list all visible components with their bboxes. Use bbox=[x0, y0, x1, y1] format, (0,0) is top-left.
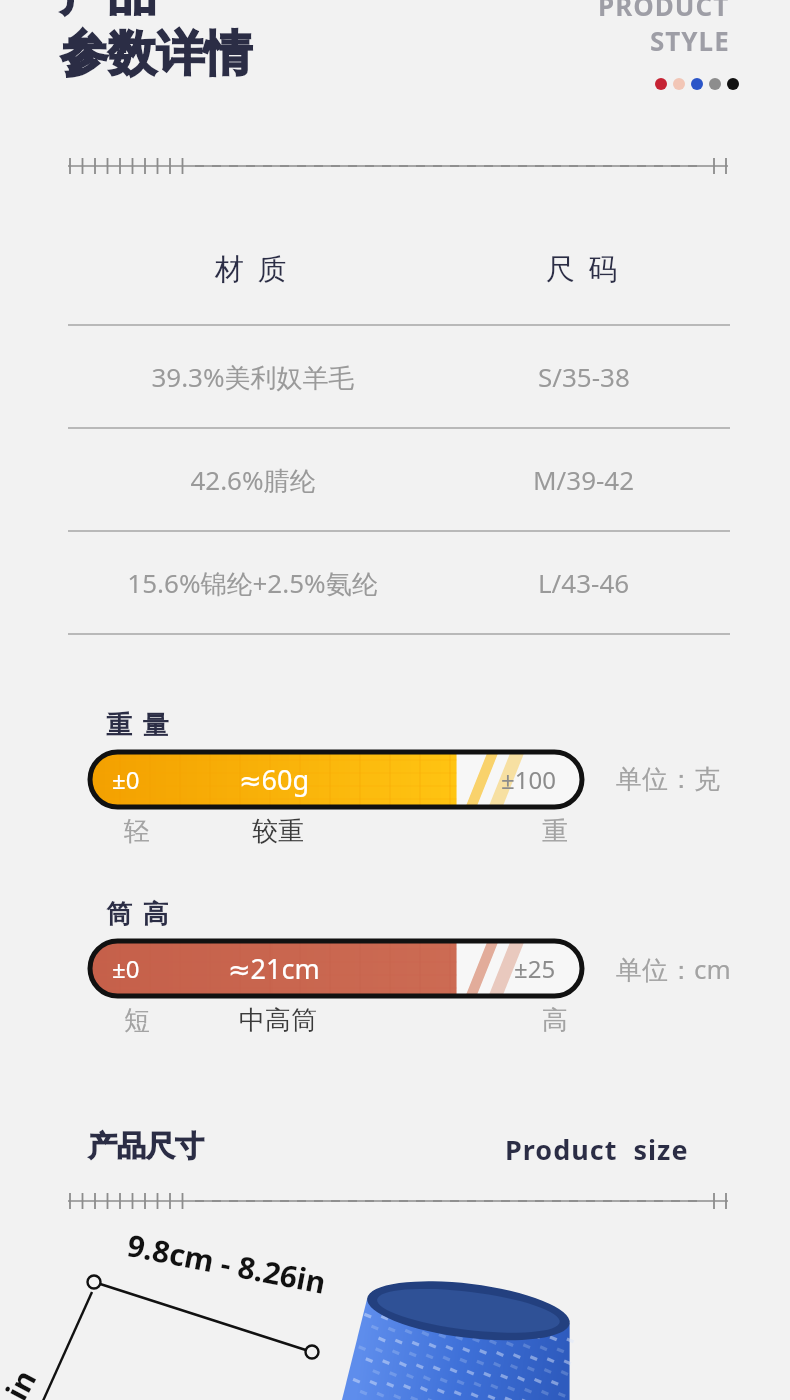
button[interactable]: 15.6%锦纶+2.5%氨纶 bbox=[68, 532, 730, 633]
staticText: 重 量 bbox=[106, 706, 171, 742]
staticText: 参数详情 bbox=[60, 24, 252, 84]
staticText: 较重 bbox=[252, 815, 304, 848]
staticText: 短 bbox=[124, 1004, 150, 1037]
staticText: 产品尺寸 bbox=[88, 1128, 204, 1165]
staticText: 重 bbox=[542, 815, 568, 848]
button[interactable]: 42.6%腈纶 bbox=[68, 429, 730, 530]
staticText: ≈21cm bbox=[228, 950, 320, 987]
staticText: M/39-42 bbox=[533, 462, 635, 497]
staticText: 42.6%腈纶 bbox=[190, 462, 316, 498]
staticText: 9.8cm - 8.26in bbox=[124, 1224, 330, 1303]
staticText: ±0 bbox=[112, 952, 140, 985]
staticText: ±25 bbox=[514, 952, 556, 985]
staticText: PRODUCT bbox=[598, 0, 730, 23]
staticText: 尺 码 bbox=[546, 248, 621, 288]
button[interactable]: Colour options bbox=[655, 78, 739, 90]
staticText: Product size bbox=[505, 1131, 689, 1168]
staticText: ±0 bbox=[112, 763, 140, 796]
staticText: ±100 bbox=[501, 763, 556, 796]
staticText: 高 bbox=[542, 1004, 568, 1037]
staticText: STYLE bbox=[650, 23, 730, 58]
staticText: 产品 bbox=[60, 0, 156, 24]
staticText: 轻 bbox=[124, 815, 150, 848]
staticText: 15.6%锦纶+2.5%氨纶 bbox=[127, 565, 378, 601]
staticText: in bbox=[0, 1362, 45, 1400]
staticText: S/35-38 bbox=[538, 359, 630, 394]
staticText: 单位：克 bbox=[616, 763, 720, 796]
button[interactable]: 39.3%美利奴羊毛 bbox=[68, 326, 730, 427]
staticText: 材 质 bbox=[215, 248, 290, 288]
staticText: L/43-46 bbox=[538, 565, 630, 600]
staticText: 单位：cm bbox=[616, 951, 731, 987]
button[interactable]: ±0 bbox=[90, 941, 582, 996]
staticText: 筒 高 bbox=[106, 895, 171, 931]
staticText: 39.3%美利奴羊毛 bbox=[151, 359, 355, 395]
button[interactable]: ±0 bbox=[90, 752, 582, 807]
staticText: ≈60g bbox=[239, 761, 310, 798]
staticText: 中高筒 bbox=[239, 1004, 317, 1037]
